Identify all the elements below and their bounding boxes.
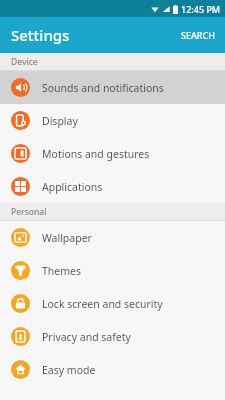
staticText: Motions and gestures <box>42 147 150 161</box>
staticText: Sounds and notifications <box>42 81 164 95</box>
staticText: Settings <box>11 25 70 45</box>
button[interactable]: Applications <box>0 170 225 203</box>
button[interactable]: Sounds and notifications <box>0 71 225 104</box>
staticText: Wallpaper <box>42 231 92 245</box>
staticText: Lock screen and security <box>42 297 163 311</box>
button[interactable]: Display <box>0 104 225 137</box>
button[interactable]: SEARCH <box>171 21 225 49</box>
button[interactable]: Wallpaper <box>0 221 225 254</box>
staticText: 12:45 PM <box>181 3 221 15</box>
button[interactable]: Privacy and safety <box>0 320 225 353</box>
staticText: Display <box>42 114 78 128</box>
staticText: Device <box>11 56 38 68</box>
staticText: Privacy and safety <box>42 330 131 344</box>
button[interactable]: Lock screen and security <box>0 287 225 320</box>
staticText: Themes <box>42 264 82 278</box>
button[interactable]: Themes <box>0 254 225 287</box>
button[interactable]: Motions and gestures <box>0 137 225 170</box>
staticText: SEARCH <box>181 29 215 41</box>
staticText: Personal <box>11 206 47 218</box>
staticText: Applications <box>42 180 103 194</box>
staticText: Easy mode <box>42 363 96 377</box>
button[interactable]: Easy mode <box>0 353 225 386</box>
